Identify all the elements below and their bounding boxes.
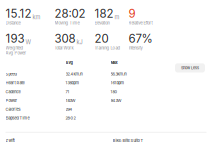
staticText: 67% — [128, 32, 152, 45]
staticText: 294 — [65, 107, 72, 112]
staticText: 9 — [128, 7, 135, 20]
staticText: 138bpm — [65, 80, 79, 85]
staticText: W — [25, 39, 31, 45]
staticText: Bike: Elite Suito T — [112, 138, 143, 143]
staticText: 15.12 — [5, 7, 31, 20]
staticText: 183W — [65, 98, 75, 103]
staticText: 32.4km/h — [65, 72, 82, 76]
staticText: Weighted Avg Power — [5, 45, 26, 55]
staticText: Heart Rate — [5, 80, 24, 85]
staticText: 20 — [94, 32, 108, 45]
staticText: Speed — [5, 72, 16, 76]
staticText: m — [114, 14, 119, 20]
staticText: Elapsed Time — [5, 116, 29, 120]
staticText: Moving Time — [54, 20, 79, 25]
staticText: Max — [110, 60, 117, 65]
staticText: 180 — [110, 89, 117, 94]
staticText: 161bpm — [110, 80, 124, 85]
staticText: 28:02 — [65, 116, 75, 120]
staticText: Training Load — [94, 45, 120, 50]
staticText: kJ — [76, 39, 82, 45]
staticText: Zwift — [5, 138, 14, 143]
staticText: 193 — [5, 32, 24, 45]
staticText: Intensity — [128, 45, 142, 50]
staticText: Show Less — [181, 66, 199, 70]
staticText: 56.3km/h — [110, 72, 126, 76]
staticText: Cadence — [5, 89, 20, 94]
staticText: 71 — [65, 89, 69, 94]
staticText: 943W — [110, 98, 121, 103]
staticText: Relative Effort — [128, 20, 152, 25]
staticText: Distance — [5, 20, 20, 25]
staticText: 28:02 — [54, 7, 85, 20]
staticText: km — [32, 14, 40, 20]
staticText: 308 — [54, 32, 75, 45]
staticText: Calories — [5, 107, 20, 112]
button[interactable]: Show Less — [175, 63, 205, 72]
staticText: 182 — [94, 7, 113, 20]
staticText: Total Work — [54, 45, 73, 50]
staticText: Avg — [65, 60, 72, 65]
staticText: Power — [5, 98, 17, 103]
staticText: Elevation — [94, 20, 109, 25]
